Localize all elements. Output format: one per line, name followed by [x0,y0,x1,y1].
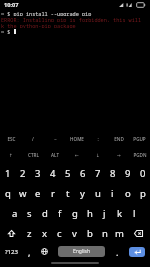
button[interactable]: ALT [44,147,66,163]
staticText: ↑ [9,153,13,158]
button[interactable]: d [37,203,52,223]
button[interactable]: j [97,203,112,223]
button[interactable]: s [22,203,37,223]
button[interactable]: q [0,183,15,203]
button[interactable]: 8 [105,163,120,183]
button[interactable]: Change language [37,243,52,260]
staticText: 0 [140,167,146,180]
staticText: ← [75,153,79,158]
staticText: 10:07 [4,1,19,9]
staticText: k [117,207,123,220]
staticText: g [72,207,78,220]
button[interactable]: ↑ [0,147,22,163]
staticText: ERROR: Installing pip is forbidden, this… [1,16,150,22]
button[interactable]: 5 [60,163,75,183]
staticText: i [111,187,114,200]
staticText: y [80,187,85,200]
button[interactable]: English [58,246,105,257]
staticText: x [42,227,48,240]
staticText: v [72,227,77,240]
button[interactable]: m [112,223,127,243]
button[interactable]: w [15,183,30,203]
staticText: ~ $ pip install --upgrade pip [1,10,92,16]
staticText: p [140,187,146,200]
button[interactable]: 9 [120,163,135,183]
staticText: ESC [7,136,16,142]
button[interactable]: k [112,203,127,223]
staticText: / [32,136,34,142]
button[interactable]: g [67,203,82,223]
button[interactable]: 0 [135,163,150,183]
staticText: r [51,187,55,200]
button[interactable]: Shift [0,223,22,243]
staticText: 5 [65,167,71,180]
button[interactable]: t [60,183,75,203]
button[interactable]: o [120,183,135,203]
button[interactable]: PGDN [129,147,150,163]
button[interactable]: PGUP [129,131,150,147]
button[interactable]: : [87,131,108,147]
staticText: b [87,227,93,240]
button[interactable]: ?123 [0,243,22,260]
button[interactable]: y [75,183,90,203]
button[interactable]: → [108,147,129,163]
button[interactable]: i [105,183,120,203]
button[interactable]: ESC [0,131,22,147]
staticText: PGDN [133,152,147,158]
staticText: o [125,187,131,200]
button[interactable]: 7 [90,163,105,183]
staticText: 4 [50,167,56,180]
button[interactable]: l [127,203,142,223]
staticText: CTRL [28,152,39,158]
button[interactable]: / [22,131,44,147]
button[interactable]: x [37,223,52,243]
staticText: . [116,246,119,258]
staticText: m [115,227,124,240]
button[interactable]: . [105,243,129,260]
button[interactable]: r [45,183,60,203]
button[interactable]: h [82,203,97,223]
button[interactable]: c [52,223,67,243]
button[interactable]: 6 [75,163,90,183]
button[interactable]: 4 [45,163,60,183]
staticText: s [27,207,32,220]
staticText: a [12,207,18,220]
button[interactable]: p [135,183,150,203]
button[interactable]: e [30,183,45,203]
button[interactable]: Backspace [127,223,150,243]
button[interactable]: HOME [66,131,87,147]
staticText: ALT [51,152,59,158]
button[interactable]: 2 [15,163,30,183]
staticText: ~ $ [1,28,14,34]
button[interactable]: , [22,243,37,260]
staticText: n [102,227,108,240]
button[interactable]: u [90,183,105,203]
staticText: w [19,187,27,200]
button[interactable]: CTRL [22,147,44,163]
staticText: : [97,136,99,142]
button[interactable]: b [82,223,97,243]
button[interactable]: END [108,131,129,147]
button[interactable]: ↓ [87,147,108,163]
button[interactable]: v [67,223,82,243]
staticText: ?123 [5,248,18,256]
button[interactable]: n [97,223,112,243]
staticText: − [54,136,57,142]
staticText: j [103,207,106,220]
button[interactable]: ← [66,147,87,163]
button[interactable]: z [22,223,37,243]
button[interactable]: 3 [30,163,45,183]
staticText: u [95,187,101,200]
button[interactable]: f [52,203,67,223]
staticText: h [87,207,93,220]
button[interactable]: 1 [0,163,15,183]
staticText: , [28,246,31,258]
staticText: 1 [5,167,11,180]
button[interactable]: a [7,203,22,223]
staticText: l [133,207,136,220]
staticText: k the python-pip package [1,22,76,28]
staticText: → [117,153,121,158]
staticText: HOME [70,136,84,142]
button[interactable]: Enter [129,247,145,257]
button[interactable]: − [44,131,66,147]
